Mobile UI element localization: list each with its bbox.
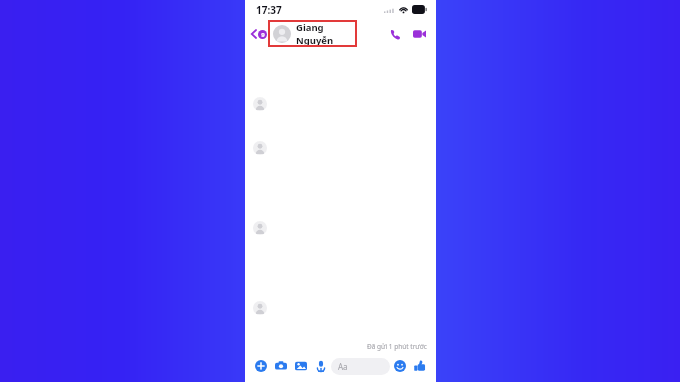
button[interactable]: Emoji xyxy=(390,355,410,377)
button[interactable]: Send like xyxy=(410,355,430,377)
staticText: Aa xyxy=(338,361,348,372)
staticText: Đã gửi 1 phút trước xyxy=(367,342,427,351)
button[interactable]: Sender avatar xyxy=(253,97,267,111)
button[interactable]: Camera xyxy=(271,355,291,377)
button[interactable]: Add attachment xyxy=(251,355,271,377)
button[interactable]: Back xyxy=(249,26,269,42)
button[interactable]: Aa xyxy=(331,358,390,375)
staticText: 9 xyxy=(261,31,265,39)
button[interactable]: Photo gallery xyxy=(291,355,311,377)
button[interactable]: Voice call xyxy=(385,24,405,44)
staticText: 17:37 xyxy=(256,3,282,17)
button[interactable]: Giang Nguyễn xyxy=(268,20,357,47)
button[interactable]: Sender avatar xyxy=(253,301,267,315)
button[interactable]: Video call xyxy=(409,24,429,44)
staticText: Giang Nguyễn xyxy=(296,21,357,47)
button[interactable]: Sender avatar xyxy=(253,221,267,235)
button[interactable]: Voice message xyxy=(311,355,331,377)
button[interactable]: Sender avatar xyxy=(253,141,267,155)
